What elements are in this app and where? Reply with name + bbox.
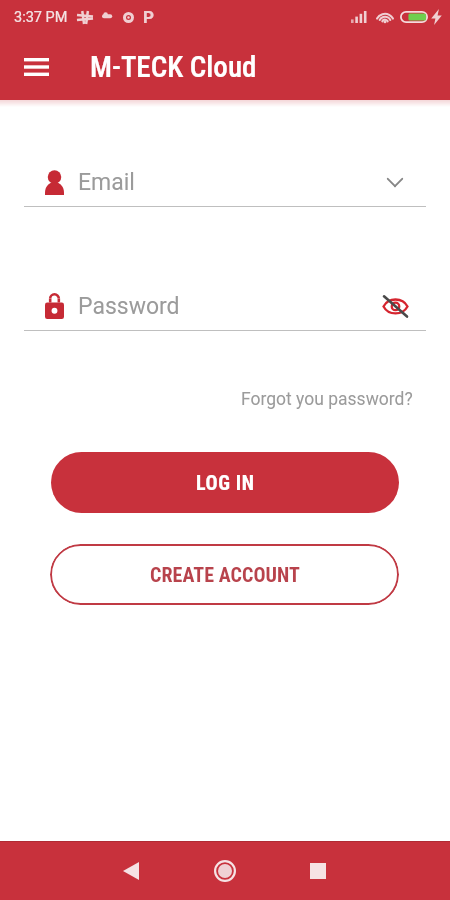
staticText: P: [143, 7, 154, 27]
button[interactable]: Toggle password visibility: [376, 287, 414, 325]
staticText: LOG IN: [196, 471, 255, 494]
button[interactable]: Open navigation menu: [12, 43, 60, 91]
staticText: CREATE ACCOUNT: [150, 563, 300, 586]
button[interactable]: Back: [108, 848, 154, 894]
button[interactable]: Forgot you password?: [241, 389, 413, 410]
staticText: 3:37 PM: [14, 9, 68, 26]
staticText: Forgot you password?: [241, 389, 413, 410]
button[interactable]: Show email suggestions: [376, 163, 414, 201]
staticText: Email: [78, 169, 135, 196]
button[interactable]: LOG IN: [51, 452, 399, 513]
staticText: M-TECK Cloud: [90, 50, 257, 84]
button[interactable]: CREATE ACCOUNT: [50, 544, 399, 605]
staticText: Password: [78, 293, 180, 320]
button[interactable]: Recent apps: [295, 848, 341, 894]
button[interactable]: Home: [202, 848, 248, 894]
